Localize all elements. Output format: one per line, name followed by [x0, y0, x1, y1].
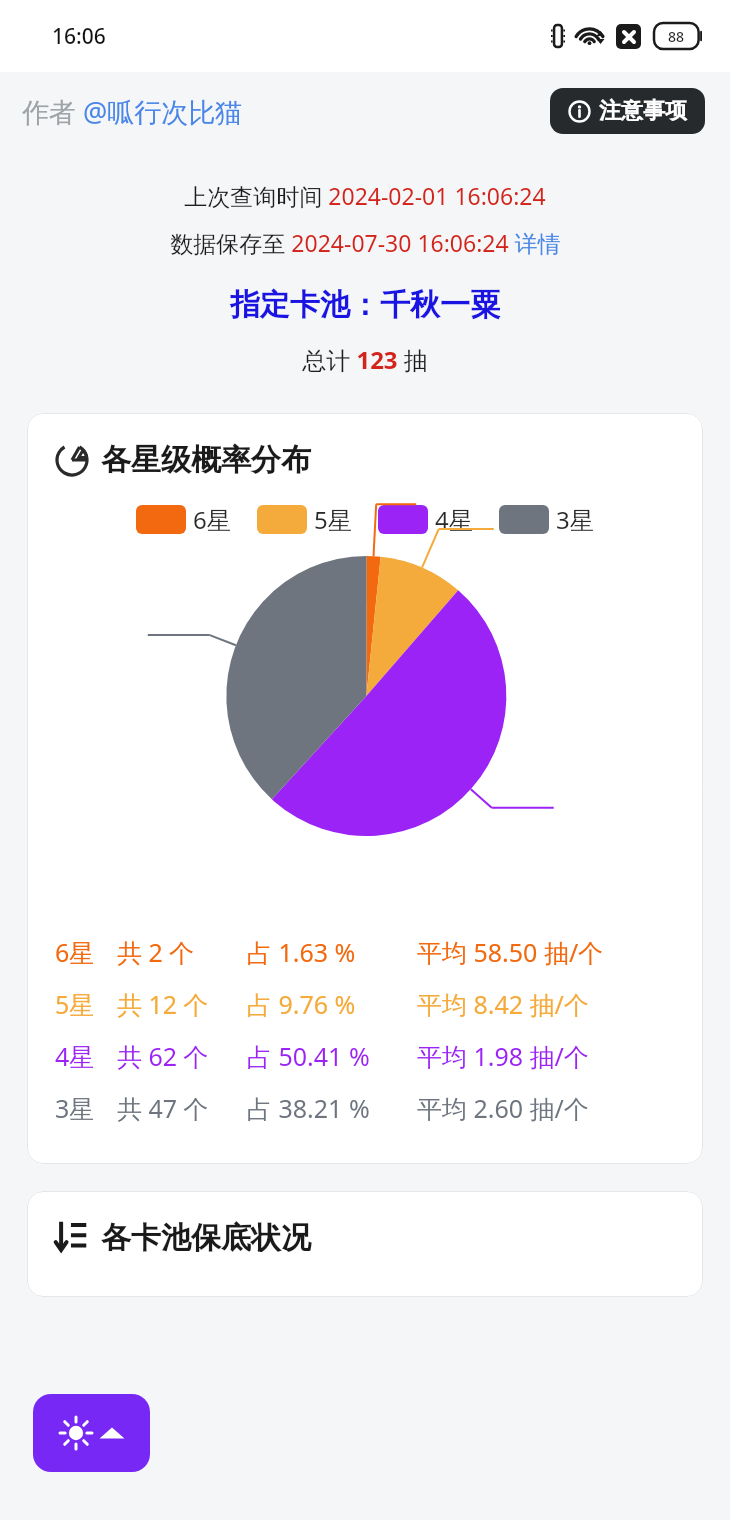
staticText: 6星 — [55, 935, 117, 969]
staticText: 注意事项 — [599, 97, 687, 125]
button[interactable]: 各卡池保底状况 — [27, 1191, 703, 1297]
staticText: 6星 — [193, 503, 231, 536]
staticText: 总计 123 抽 — [0, 343, 730, 376]
staticText: 平均 1.98 抽/个 — [417, 1039, 589, 1073]
staticText: 5星 — [314, 503, 352, 536]
staticText: 共 2 个 — [117, 935, 247, 969]
staticText: 共 62 个 — [117, 1039, 247, 1073]
staticText: 16:06 — [52, 22, 106, 51]
staticText: 3星 — [556, 503, 594, 536]
button[interactable]: Toggle theme and scroll to top — [33, 1394, 150, 1472]
staticText: 共 12 个 — [117, 987, 247, 1021]
staticText: 占 9.76 % — [247, 987, 417, 1021]
staticText: 88 — [668, 27, 685, 46]
staticText: 作者 @呱行次比猫 — [22, 93, 243, 130]
staticText: 各卡池保底状况 — [101, 1219, 311, 1257]
staticText: 数据保存至 2024-07-30 16:06:24 详情 — [170, 227, 561, 258]
staticText: 5星 — [55, 987, 117, 1021]
staticText: 平均 2.60 抽/个 — [417, 1091, 589, 1125]
staticText: 占 38.21 % — [247, 1091, 417, 1125]
staticText: 占 1.63 % — [247, 935, 417, 969]
button[interactable]: 注意事项 — [550, 88, 705, 134]
staticText: 4星 — [55, 1039, 117, 1073]
staticText: 3星 — [55, 1091, 117, 1125]
staticText: 各星级概率分布 — [101, 441, 311, 479]
staticText: 平均 58.50 抽/个 — [417, 935, 604, 969]
staticText: 共 47 个 — [117, 1091, 247, 1125]
staticText: 4星 — [435, 503, 473, 536]
staticText: 指定卡池：千秋一粟 — [0, 286, 730, 324]
button[interactable]: 各星级概率分布 — [27, 413, 703, 1164]
staticText: 占 50.41 % — [247, 1039, 417, 1073]
staticText: 平均 8.42 抽/个 — [417, 987, 589, 1021]
staticText: 上次查询时间 2024-02-01 16:06:24 — [184, 180, 546, 211]
